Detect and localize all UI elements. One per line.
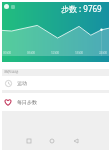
staticText: 步数 : 9769 bbox=[61, 3, 102, 14]
staticText: 06:00 bbox=[27, 51, 36, 55]
staticText: 我的运动 bbox=[4, 70, 19, 75]
button[interactable]: 运动 bbox=[2, 76, 109, 90]
staticText: 18:00 bbox=[75, 51, 84, 55]
staticText: 00:00 bbox=[3, 51, 12, 55]
button[interactable]: Back bbox=[69, 134, 83, 148]
staticText: 运动 bbox=[17, 80, 27, 86]
staticText: 12:00 bbox=[51, 51, 60, 55]
staticText: 每日步数 bbox=[17, 99, 37, 105]
button[interactable]: 每日步数 bbox=[2, 93, 109, 111]
button[interactable]: Recents bbox=[22, 134, 36, 148]
staticText: 24:00 bbox=[99, 51, 108, 55]
button[interactable]: Home bbox=[45, 134, 59, 148]
